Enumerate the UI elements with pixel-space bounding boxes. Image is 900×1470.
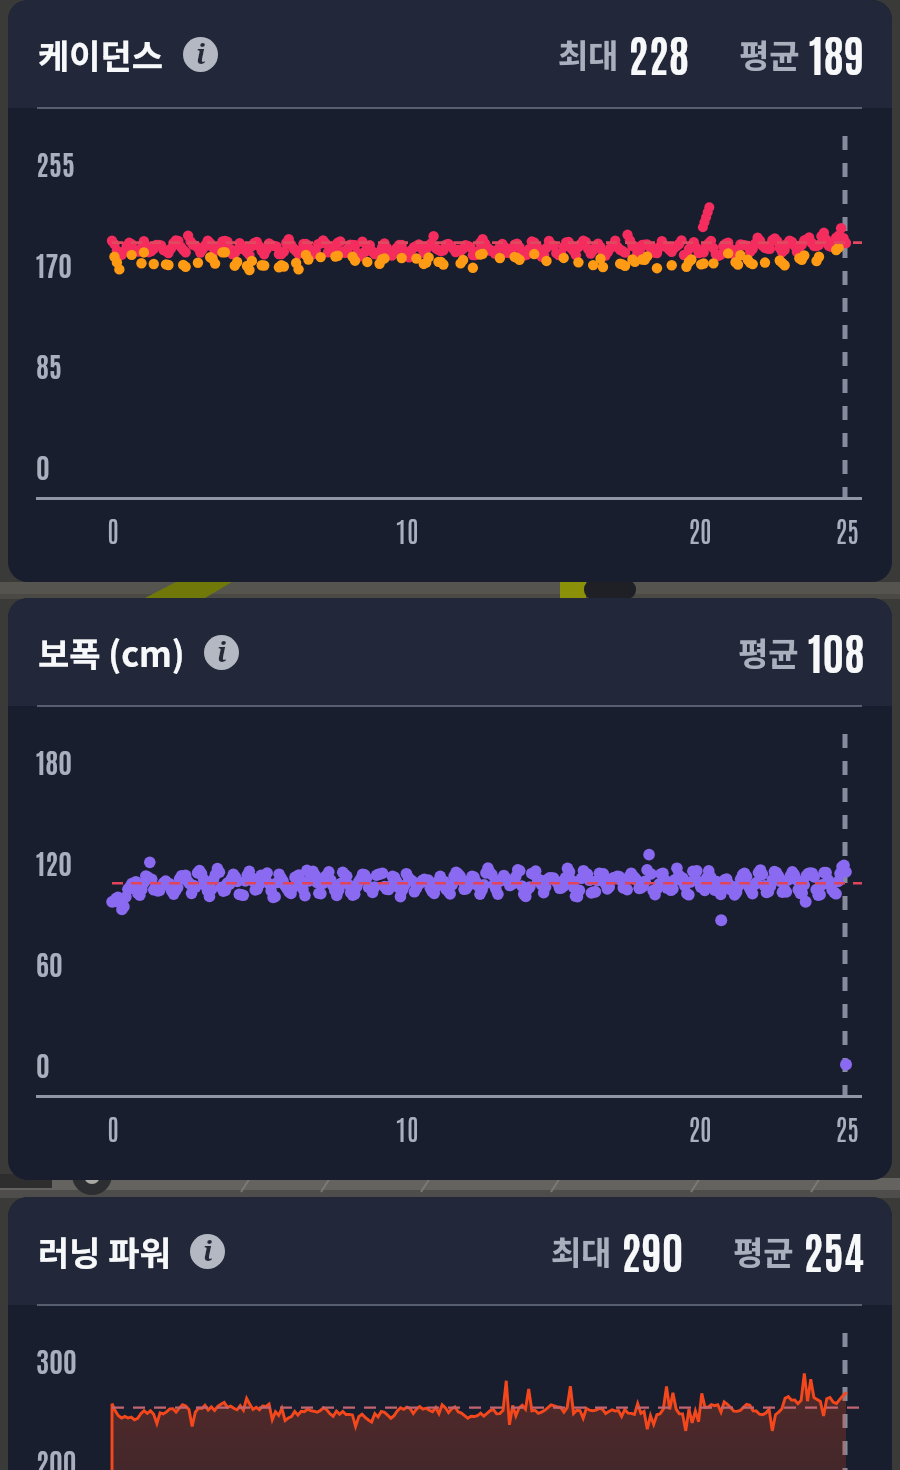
- staticText: i: [217, 635, 227, 668]
- staticText: 200: [36, 1443, 77, 1470]
- staticText: 0: [73, 1110, 153, 1146]
- staticText: 25: [807, 512, 887, 548]
- staticText: 254: [803, 1221, 865, 1278]
- staticText: 300: [36, 1342, 77, 1378]
- staticText: i: [203, 1234, 213, 1267]
- staticText: i: [196, 37, 206, 70]
- button[interactable]: 정보: [190, 1234, 225, 1269]
- staticText: 평균: [733, 1227, 794, 1275]
- staticText: 228: [628, 24, 690, 81]
- staticText: 108: [808, 622, 865, 679]
- staticText: 최대: [551, 1227, 612, 1275]
- staticText: 290: [621, 1221, 684, 1278]
- staticText: 85: [36, 347, 63, 383]
- staticText: 0: [36, 1046, 50, 1082]
- staticText: 25: [807, 1110, 887, 1146]
- staticText: 최대: [558, 30, 619, 78]
- button[interactable]: 정보: [183, 37, 218, 72]
- button[interactable]: 정보: [204, 635, 239, 670]
- staticText: 10: [367, 1110, 447, 1146]
- staticText: 러닝 파워: [38, 1227, 171, 1276]
- staticText: 평균: [739, 30, 800, 78]
- staticText: 255: [36, 145, 76, 181]
- staticText: 60: [36, 945, 63, 981]
- staticText: 180: [36, 743, 73, 779]
- staticText: 20: [660, 512, 740, 548]
- staticText: 10: [367, 512, 447, 548]
- staticText: 0: [73, 512, 153, 548]
- staticText: 20: [660, 1110, 740, 1146]
- staticText: 170: [36, 246, 73, 282]
- staticText: 케이던스: [38, 30, 164, 79]
- staticText: 보폭 (cm): [38, 628, 185, 677]
- staticText: 189: [809, 24, 865, 81]
- staticText: 120: [36, 844, 73, 880]
- staticText: 0: [36, 448, 50, 484]
- staticText: 평균: [738, 628, 799, 676]
